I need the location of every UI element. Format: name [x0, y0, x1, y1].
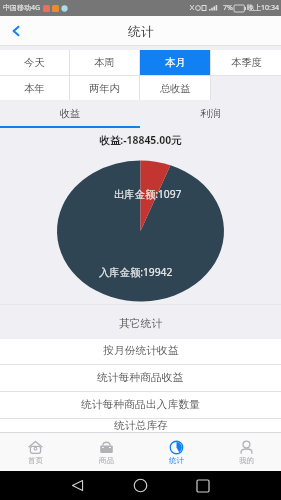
staticText: 利润 [200, 107, 221, 120]
staticText: 7% [223, 3, 233, 13]
staticText: 收益:-18845.00元 [0, 133, 281, 147]
button[interactable]: 本年 [0, 76, 69, 100]
staticText: 出库金额:1097 [114, 187, 182, 201]
staticText: 本年 [24, 82, 45, 95]
staticText: 统计每种商品出入库数量 [81, 398, 200, 412]
staticText: 今天 [24, 56, 45, 69]
button[interactable]: 其它统计 [0, 305, 281, 339]
button[interactable]: 按月份统计收益 [0, 339, 281, 364]
staticText: 本月 [165, 56, 186, 69]
button[interactable]: Home [126, 471, 155, 500]
staticText: 晚上10:34 [247, 3, 279, 13]
staticText: 中国移动4G [3, 3, 41, 13]
staticText: 统计 [169, 456, 184, 465]
button[interactable]: 统计每种商品出入库数量 [0, 392, 281, 418]
staticText: 统计总库存 [114, 419, 168, 433]
staticText: 我的 [239, 456, 254, 465]
button[interactable]: Back [0, 16, 32, 46]
button[interactable]: 总收益 [140, 76, 210, 100]
button[interactable]: 本季度 [211, 50, 281, 75]
button[interactable]: 收益 [0, 100, 140, 128]
staticText: 本周 [94, 56, 115, 69]
button[interactable]: 统计总库存 [0, 419, 281, 433]
button[interactable]: Recents [188, 471, 217, 500]
staticText: 其它统计 [119, 317, 163, 331]
button[interactable]: 统计 [141, 433, 211, 471]
button[interactable]: 我的 [211, 433, 281, 471]
button[interactable]: 两年内 [70, 76, 139, 100]
staticText: 首页 [28, 456, 43, 465]
staticText: 统计每种商品收益 [97, 371, 184, 385]
button[interactable]: 本月 [140, 50, 210, 75]
staticText: 两年内 [89, 82, 120, 95]
button[interactable]: Back [63, 471, 92, 500]
button[interactable]: 首页 [0, 433, 71, 471]
button[interactable]: 商品 [71, 433, 141, 471]
button[interactable]: 利润 [140, 100, 281, 128]
button[interactable]: 统计每种商品收益 [0, 365, 281, 391]
staticText: 商品 [99, 456, 114, 465]
staticText: 收益 [60, 107, 81, 120]
staticText: 入库金额:19942 [99, 265, 173, 279]
staticText: 统计 [128, 24, 154, 40]
button[interactable]: 今天 [0, 50, 69, 75]
staticText: 按月份统计收益 [103, 344, 179, 358]
staticText: 本季度 [231, 56, 262, 69]
staticText: 总收益 [160, 82, 191, 95]
button[interactable]: 本周 [70, 50, 139, 75]
